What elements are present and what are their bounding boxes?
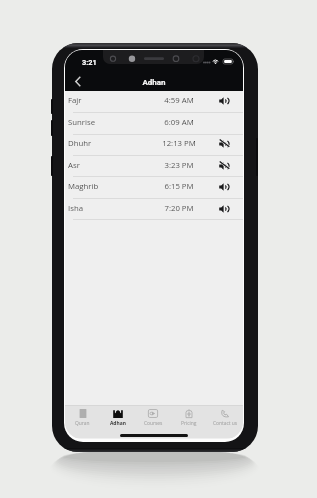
button[interactable]: Isha: [65, 199, 243, 220]
button[interactable]: Contact us: [207, 405, 243, 429]
staticText: Dhuhr: [68, 138, 92, 149]
staticText: 4:59 AM: [149, 95, 209, 106]
button[interactable]: Dhuhr: [65, 134, 243, 155]
button[interactable]: Pricing: [171, 405, 207, 429]
staticText: 6:09 AM: [149, 117, 209, 128]
staticText: 7:20 PM: [149, 203, 209, 214]
staticText: Quran: [75, 420, 90, 427]
button[interactable]: Adhan: [100, 405, 135, 429]
button[interactable]: Back: [68, 71, 87, 92]
staticText: Isha: [68, 203, 84, 214]
staticText: 12:13 PM: [149, 138, 209, 149]
button[interactable]: Asr: [65, 156, 243, 177]
staticText: Courses: [144, 420, 163, 427]
button[interactable]: Courses: [135, 405, 171, 429]
staticText: 6:15 PM: [149, 181, 209, 192]
staticText: Sunrise: [68, 117, 96, 128]
staticText: 3:21: [82, 58, 97, 67]
staticText: Maghrib: [68, 181, 99, 192]
staticText: Asr: [68, 160, 80, 171]
staticText: 3:23 PM: [149, 160, 209, 171]
staticText: Adhan: [65, 78, 243, 87]
staticText: Pricing: [181, 420, 197, 427]
staticText: Fajr: [68, 95, 82, 106]
button[interactable]: Sunrise: [65, 113, 243, 134]
staticText: Contact us: [213, 420, 238, 427]
staticText: Adhan: [110, 420, 126, 427]
button[interactable]: Maghrib: [65, 177, 243, 198]
button[interactable]: Fajr: [65, 91, 243, 112]
button[interactable]: Quran: [65, 405, 100, 429]
